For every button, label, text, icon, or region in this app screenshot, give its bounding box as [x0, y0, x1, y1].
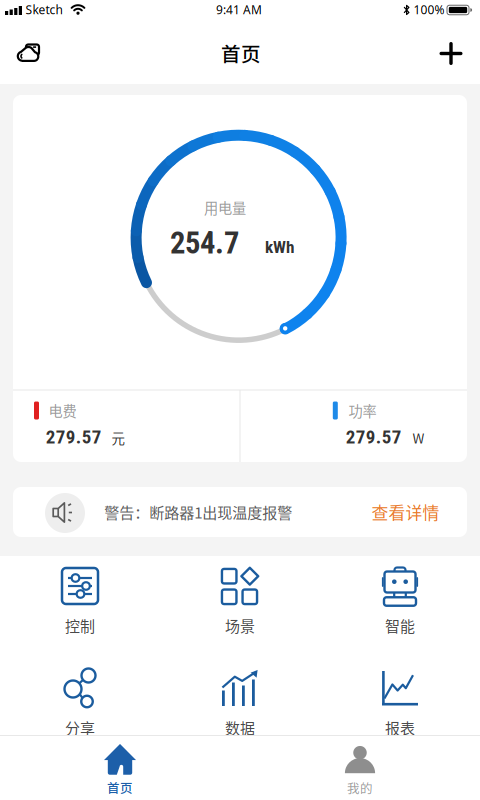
staticText: 279.57 [46, 426, 102, 448]
staticText: W [412, 428, 424, 447]
staticText: 报表 [385, 717, 415, 738]
button[interactable]: 云服务 [17, 44, 39, 62]
button[interactable]: 查看详情 [13, 487, 467, 537]
button[interactable]: 报表 [320, 658, 480, 753]
staticText: 场景 [225, 615, 255, 636]
staticText: 智能 [385, 615, 415, 636]
staticText: kWh [265, 237, 295, 257]
staticText: 首页 [107, 778, 133, 797]
staticText: 首页 [221, 39, 261, 67]
staticText: 100% [413, 1, 444, 17]
button[interactable]: 我的 [300, 743, 420, 799]
button[interactable]: 首页 [60, 742, 180, 798]
staticText: 警告：断路器1出现温度报警 [104, 501, 292, 523]
staticText: 254.7 [170, 225, 239, 261]
button[interactable]: 控制 [0, 556, 160, 651]
staticText: 我的 [347, 779, 373, 797]
staticText: Sketch [25, 1, 62, 17]
button[interactable]: 分享 [0, 658, 160, 753]
staticText: 分享 [65, 717, 95, 738]
staticText: 控制 [65, 615, 95, 636]
button[interactable]: 数据 [160, 658, 320, 753]
staticText: 数据 [225, 717, 255, 738]
staticText: 用电量 [204, 197, 246, 218]
staticText: 查看详情 [371, 500, 439, 524]
button[interactable]: 添加 [436, 38, 466, 68]
staticText: 电费 [48, 400, 76, 421]
staticText: 功率 [348, 400, 376, 421]
button[interactable]: 智能 [320, 556, 480, 651]
button[interactable]: 场景 [160, 556, 320, 651]
staticText: 元 [111, 428, 125, 447]
staticText: 279.57 [346, 426, 402, 448]
staticText: 9:41 AM [216, 1, 262, 17]
